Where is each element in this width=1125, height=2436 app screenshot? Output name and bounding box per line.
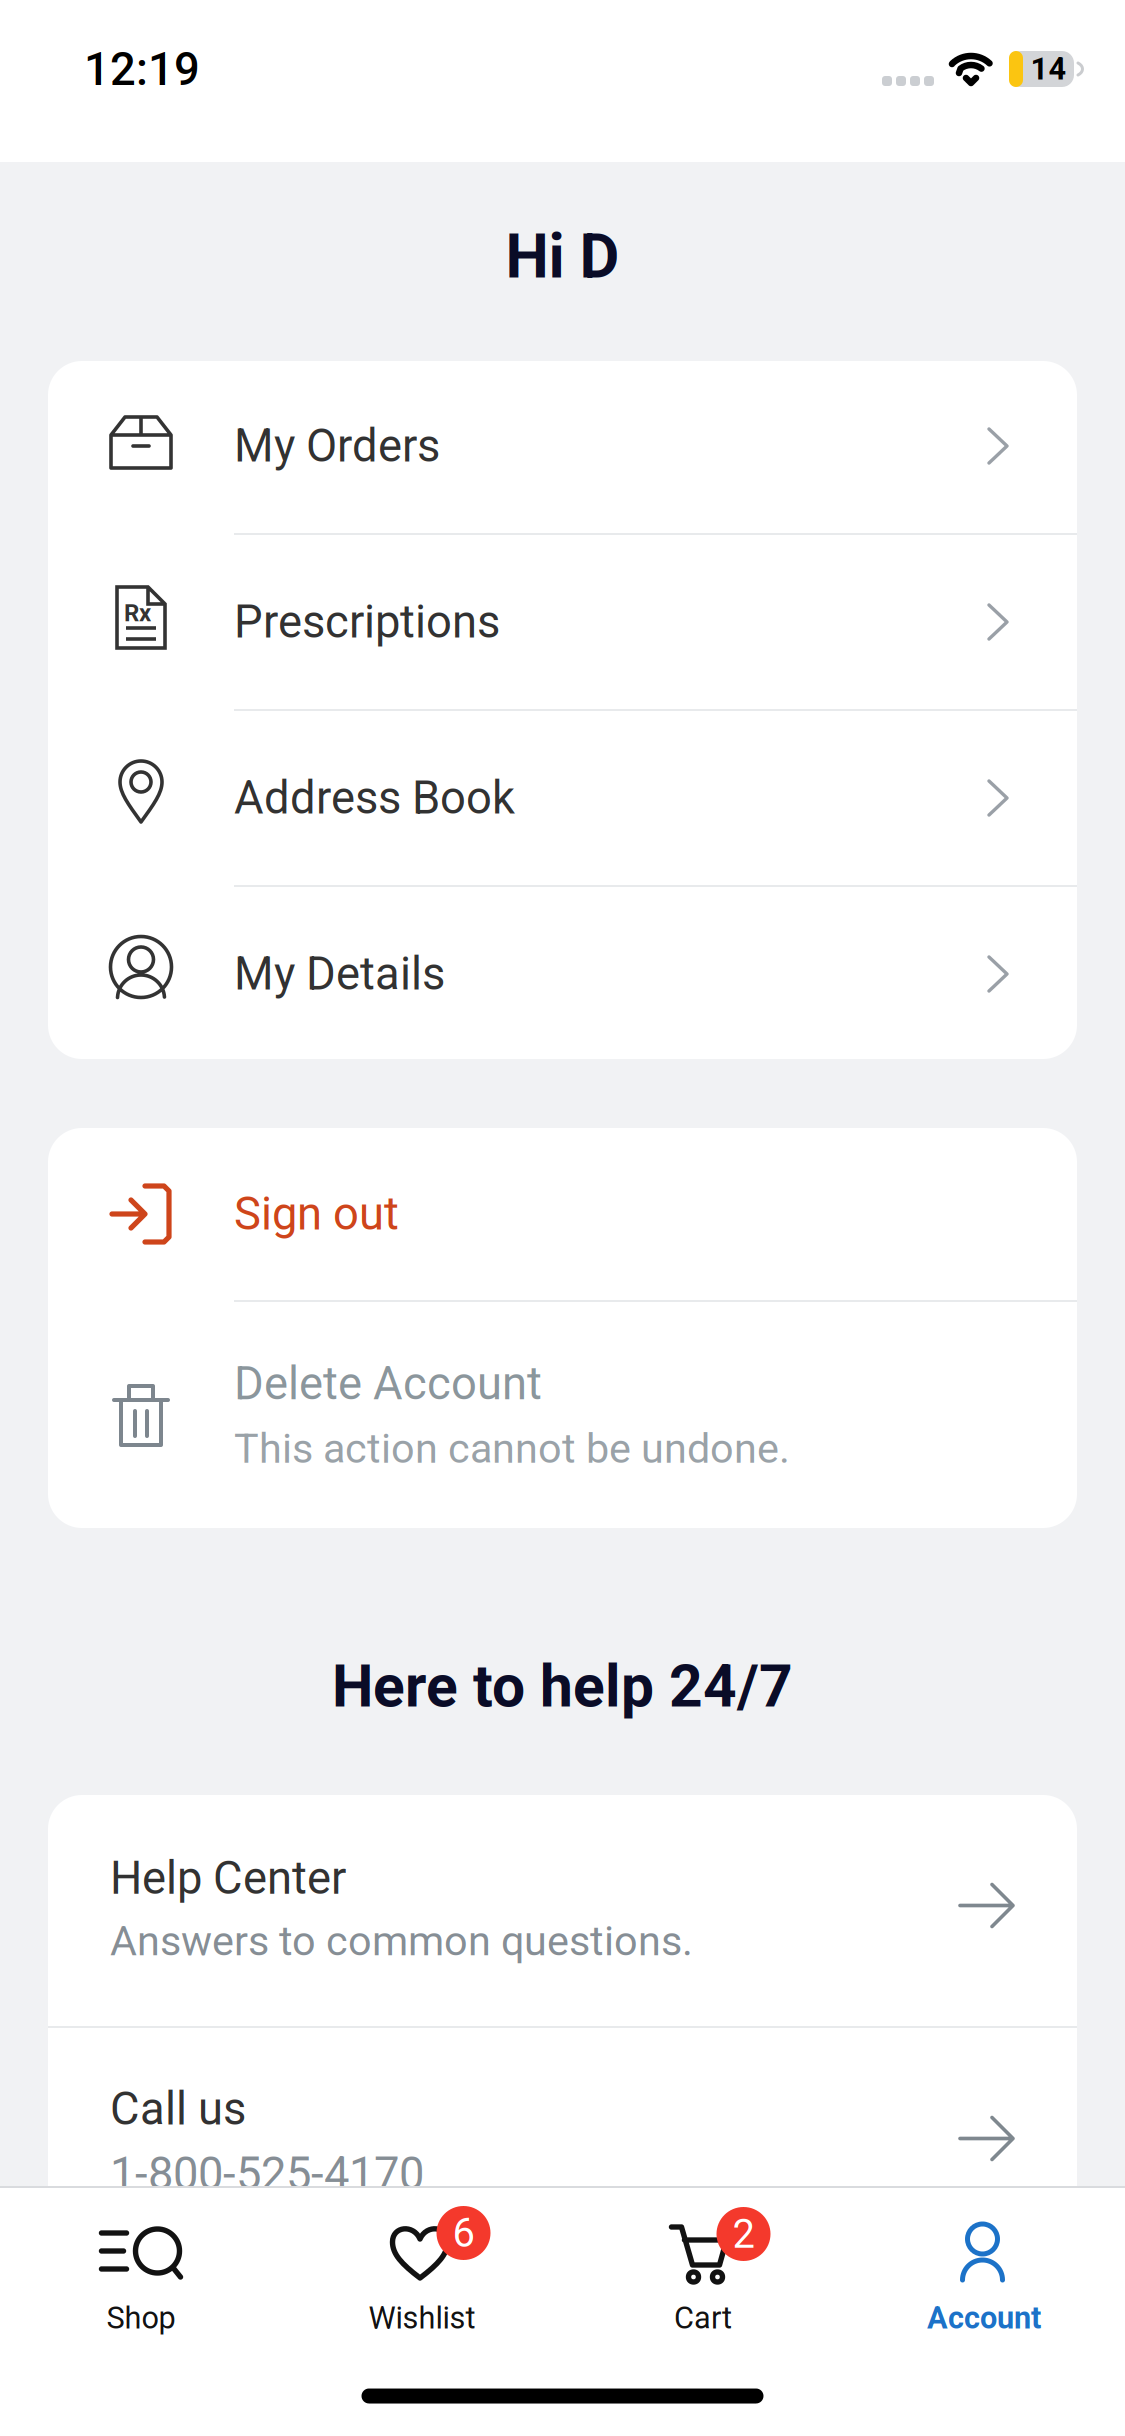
staticText: Sign out [234, 1187, 399, 1240]
button[interactable]: Delete Account [48, 1302, 1077, 1528]
button[interactable]: My Orders [48, 359, 1077, 533]
staticText: Prescriptions [234, 595, 500, 648]
staticText: Delete Account [234, 1357, 542, 1410]
button[interactable]: Rx [48, 535, 1077, 709]
button[interactable]: 6 [281, 2188, 562, 2356]
staticText: Account [927, 2300, 1041, 2336]
staticText: Help Center [110, 1852, 346, 1905]
button[interactable]: Address Book [48, 711, 1077, 885]
staticText: Address Book [234, 771, 515, 824]
staticText: 6 [452, 2210, 474, 2256]
staticText: 12:19 [84, 43, 200, 96]
staticText: Answers to common questions. [110, 1917, 693, 1965]
staticText: 2 [732, 2211, 754, 2257]
button[interactable]: Sign out [48, 1128, 1077, 1300]
button[interactable]: Shop [0, 2188, 281, 2356]
button[interactable]: 2 [562, 2188, 843, 2356]
staticText: This action cannot be undone. [234, 1424, 790, 1473]
staticText: Wishlist [368, 2300, 475, 2336]
staticText: Cart [674, 2300, 732, 2336]
staticText: Shop [106, 2300, 175, 2336]
staticText: Rx [124, 599, 151, 627]
staticText: Here to help 24/7 [332, 1652, 793, 1721]
staticText: Hi D [505, 221, 619, 292]
staticText: My Orders [234, 419, 440, 472]
staticText: 1-800-525-4170 [110, 2147, 424, 2201]
staticText: Call us [110, 2082, 246, 2135]
button[interactable]: Call us [48, 2028, 1077, 2259]
button[interactable]: Account [843, 2188, 1124, 2356]
staticText: My Details [234, 947, 445, 1000]
button[interactable]: My Details [48, 887, 1077, 1061]
button[interactable]: Help Center [48, 1795, 1077, 2026]
staticText: 14 [1030, 51, 1066, 87]
